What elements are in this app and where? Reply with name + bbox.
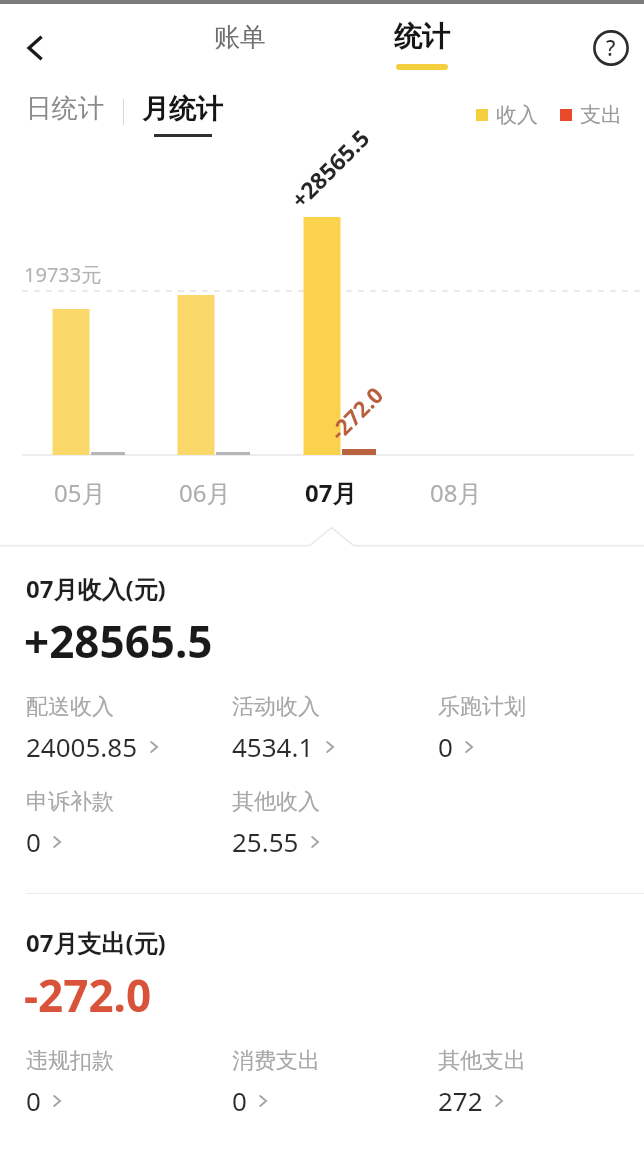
button[interactable]: 乐跑计划 — [438, 693, 536, 764]
staticText: +28565.5 — [24, 611, 213, 671]
staticText: 0 — [232, 1083, 247, 1118]
staticText: 统计 — [394, 19, 450, 54]
button[interactable]: Back — [6, 19, 64, 77]
staticText: 日统计 — [26, 92, 104, 125]
staticText: 月统计 — [142, 92, 223, 126]
staticText: 0 — [438, 729, 453, 764]
button[interactable]: 其他支出 — [438, 1047, 536, 1118]
button[interactable]: 违规扣款 — [26, 1047, 124, 1118]
button[interactable]: 配送收入 — [26, 693, 171, 764]
staticText: 违规扣款 — [26, 1047, 114, 1075]
button[interactable]: 活动收入 — [232, 693, 347, 764]
staticText: ? — [606, 34, 616, 63]
button[interactable]: 其他收入 — [232, 788, 332, 859]
staticText: 支出 — [580, 102, 622, 128]
staticText: 0 — [26, 1083, 41, 1118]
button[interactable]: 日统计 — [26, 92, 104, 125]
staticText: 其他支出 — [438, 1047, 526, 1075]
staticText: 24005.85 — [26, 729, 138, 764]
staticText: 乐跑计划 — [438, 693, 526, 721]
button[interactable]: Help — [582, 19, 640, 77]
staticText: 07月支出(元) — [26, 926, 166, 959]
staticText: 申诉补款 — [26, 788, 114, 816]
staticText: 活动收入 — [232, 693, 320, 721]
staticText: 272 — [438, 1083, 483, 1118]
staticText: -272.0 — [24, 965, 152, 1025]
button[interactable]: 申诉补款 — [26, 788, 124, 859]
staticText: 其他收入 — [232, 788, 320, 816]
staticText: 配送收入 — [26, 693, 114, 721]
button[interactable]: 月统计 — [142, 92, 223, 137]
staticText: 0 — [26, 824, 41, 859]
staticText: 收入 — [496, 102, 538, 128]
staticText: 4534.1 — [232, 729, 314, 764]
button[interactable]: 账单 — [188, 4, 292, 92]
button[interactable]: 统计 — [370, 4, 474, 92]
staticText: 25.55 — [232, 824, 299, 859]
staticText: 账单 — [214, 21, 266, 54]
staticText: 消费支出 — [232, 1047, 320, 1075]
button[interactable]: 消费支出 — [232, 1047, 330, 1118]
staticText: 07月收入(元) — [26, 572, 166, 605]
